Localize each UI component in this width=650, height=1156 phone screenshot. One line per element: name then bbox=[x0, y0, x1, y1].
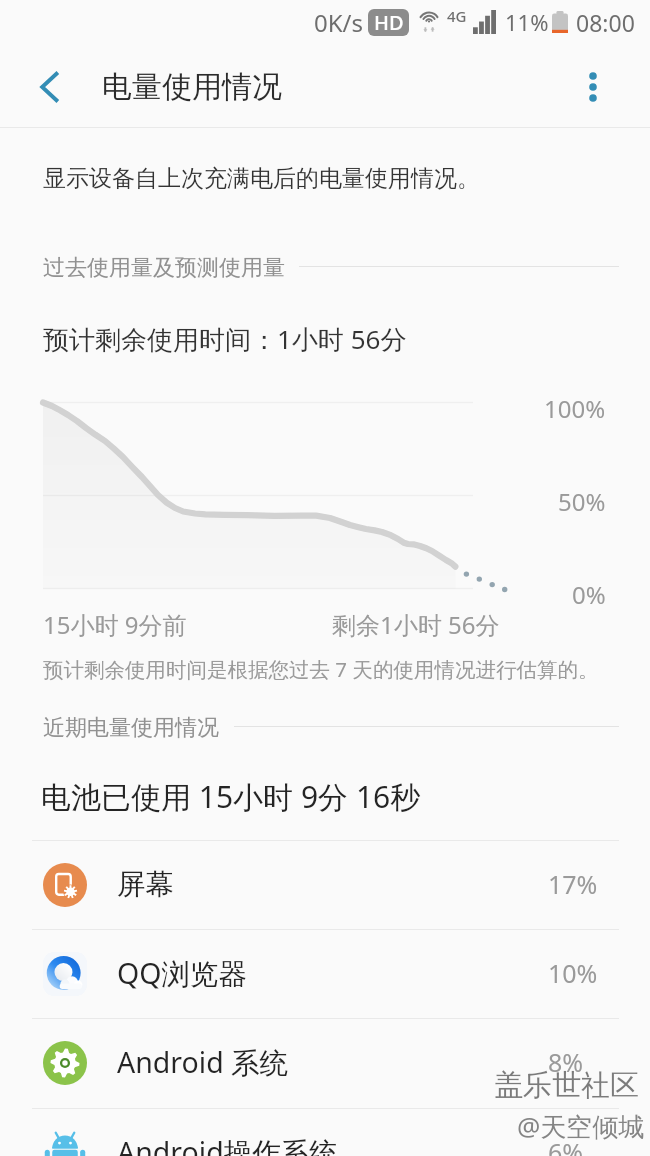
staticText: 50% bbox=[558, 485, 606, 518]
staticText: 剩余1小时 56分 bbox=[332, 608, 500, 641]
staticText: 11% bbox=[505, 7, 549, 37]
staticText: QQ浏览器 bbox=[117, 954, 248, 993]
staticText: 电池已使用 15小时 9分 16秒 bbox=[41, 776, 421, 817]
button[interactable]: Android操作系统 bbox=[0, 1109, 650, 1156]
staticText: 显示设备自上次充满电后的电量使用情况。 bbox=[43, 164, 480, 193]
staticText: 预计剩余使用时间：1小时 56分 bbox=[43, 321, 407, 357]
staticText: 4G bbox=[447, 6, 467, 26]
button[interactable]: Android 系统 bbox=[0, 1019, 650, 1106]
staticText: 预计剩余使用时间是根据您过去 7 天的使用情况进行估算的。 bbox=[43, 655, 599, 683]
staticText: 100% bbox=[544, 392, 606, 425]
button[interactable]: QQ浏览器 bbox=[0, 930, 650, 1017]
staticText: Android 系统 bbox=[117, 1043, 289, 1082]
staticText: 过去使用量及预测使用量 bbox=[43, 254, 285, 282]
staticText: 8% bbox=[548, 1045, 584, 1079]
staticText: 0% bbox=[572, 578, 606, 611]
staticText: 0K/s bbox=[314, 6, 364, 39]
staticText: 屏幕 bbox=[117, 867, 174, 903]
button[interactable]: Back bbox=[24, 62, 74, 112]
staticText: HD bbox=[374, 9, 404, 36]
staticText: 电量使用情况 bbox=[102, 68, 282, 106]
staticText: Android操作系统 bbox=[117, 1133, 338, 1156]
staticText: 6% bbox=[548, 1135, 584, 1156]
staticText: @天空倾城 bbox=[517, 1108, 645, 1144]
button[interactable]: 屏幕 bbox=[0, 841, 650, 928]
staticText: 08:00 bbox=[576, 7, 635, 38]
staticText: 15小时 9分前 bbox=[43, 608, 187, 641]
staticText: 盖乐世社区 bbox=[494, 1067, 639, 1104]
button[interactable]: More options bbox=[568, 62, 618, 112]
staticText: 近期电量使用情况 bbox=[43, 714, 219, 742]
staticText: 17% bbox=[548, 867, 598, 901]
staticText: 10% bbox=[548, 956, 598, 990]
